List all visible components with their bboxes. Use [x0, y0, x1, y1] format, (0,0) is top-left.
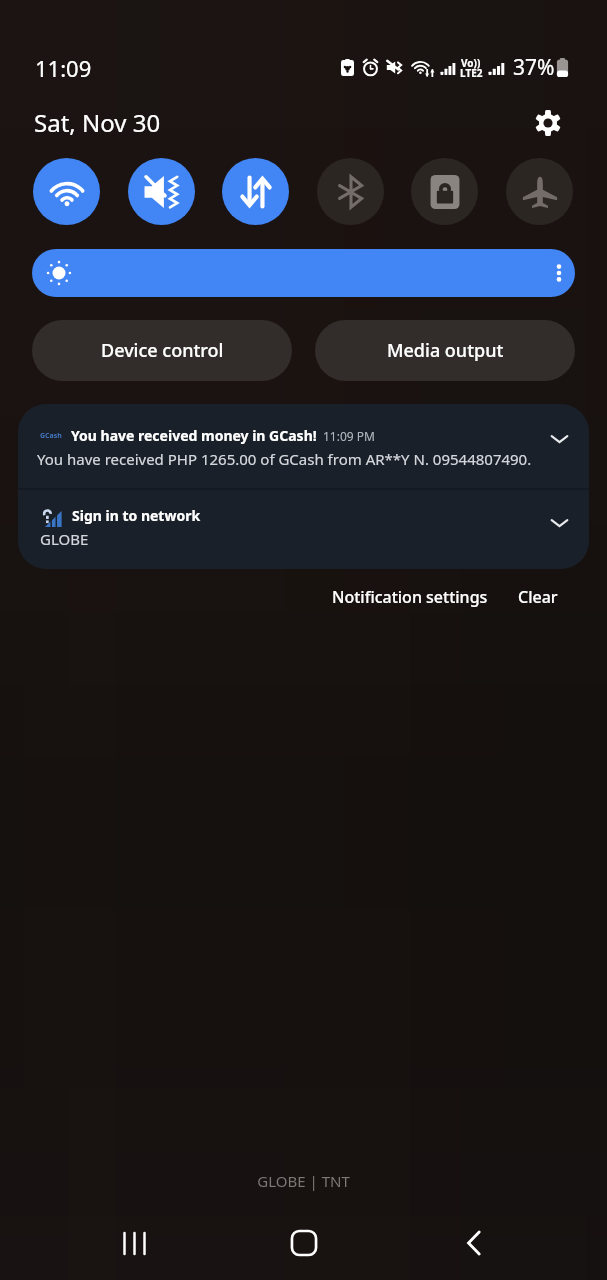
staticText: Notification settings	[332, 586, 488, 608]
staticText: Clear	[518, 586, 558, 608]
button[interactable]: Recents	[106, 1215, 162, 1271]
button[interactable]: Media output	[315, 320, 575, 381]
button[interactable]: Expand notification	[541, 420, 577, 456]
button[interactable]: Mobile data	[222, 158, 289, 225]
staticText: 11:09	[35, 53, 92, 83]
button[interactable]: Sound off	[128, 158, 195, 225]
staticText: You have received money in GCash!	[71, 426, 317, 445]
staticText: 37%	[513, 53, 555, 82]
staticText: Sat, Nov 30	[34, 106, 161, 139]
button[interactable]: Expand notification	[541, 504, 577, 540]
button[interactable]: Notification settings	[324, 577, 496, 617]
staticText: Media output	[387, 338, 504, 363]
button[interactable]: Back	[446, 1215, 502, 1271]
button[interactable]: Bluetooth	[317, 158, 384, 225]
button[interactable]: Brightness	[32, 249, 575, 297]
staticText: Device control	[101, 338, 224, 363]
staticText: Sign in to network	[72, 506, 201, 525]
staticText: Vo))	[461, 56, 481, 70]
staticText: 11:09 PM	[323, 428, 375, 444]
button[interactable]: GCash	[18, 404, 589, 487]
button[interactable]: Clear	[510, 577, 566, 617]
staticText: GCash	[40, 431, 62, 441]
button[interactable]: Airplane mode	[506, 158, 573, 225]
button[interactable]: Device control	[32, 320, 292, 381]
staticText: You have received PHP 1265.00 of GCash f…	[37, 449, 532, 469]
button[interactable]: Lock	[411, 158, 478, 225]
button[interactable]: Settings	[529, 104, 567, 142]
button[interactable]: Wi-Fi	[33, 158, 100, 225]
button[interactable]: Brightness options	[539, 253, 575, 293]
staticText: LTE2	[460, 66, 483, 80]
button[interactable]: Sign in to network	[18, 488, 589, 569]
staticText: GLOBE	[40, 529, 89, 549]
staticText: GLOBE | TNT	[0, 1171, 607, 1191]
button[interactable]: Home	[276, 1215, 332, 1271]
